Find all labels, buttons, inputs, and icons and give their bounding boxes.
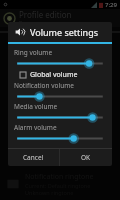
other: Volume — [15, 27, 25, 37]
staticText: Day — [19, 20, 29, 27]
staticText: Alarm volume — [14, 123, 57, 132]
button[interactable]: Notification volume — [8, 81, 112, 102]
other: App icon — [4, 13, 15, 24]
button[interactable]: Ring volume — [8, 48, 112, 69]
staticText: OK — [81, 153, 91, 162]
staticText: Notification volume — [14, 81, 74, 90]
staticText: Profile edition — [19, 9, 72, 20]
staticText: Media volume — [14, 102, 58, 111]
staticText: Cancel — [23, 153, 44, 162]
staticText: Ring volume — [14, 48, 53, 57]
staticText: 7:29 — [105, 1, 117, 9]
staticText: Volume settings — [30, 26, 98, 38]
button[interactable]: Media volume — [8, 102, 112, 123]
button[interactable]: Global volume — [8, 69, 112, 81]
button[interactable]: OK — [60, 149, 112, 166]
button[interactable]: Alarm volume — [8, 123, 112, 144]
button[interactable]: Cancel — [8, 149, 59, 166]
staticText: Global volume — [30, 70, 78, 80]
